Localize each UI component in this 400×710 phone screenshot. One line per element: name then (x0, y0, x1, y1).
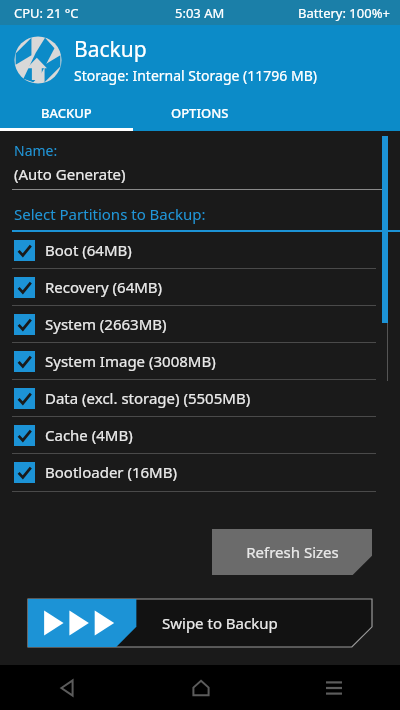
staticText: CPU: 21 °C (14, 4, 79, 22)
button[interactable]: Data (excl. storage) (5505MB) (0, 380, 400, 416)
button[interactable]: Back (0, 665, 134, 710)
button[interactable]: Menu (267, 665, 400, 710)
button[interactable]: Refresh Sizes (212, 529, 372, 575)
button[interactable]: (Auto Generate) (14, 164, 400, 184)
staticText: Bootloader (16MB) (45, 462, 177, 482)
staticText: OPTIONS (171, 104, 229, 122)
staticText: Boot (64MB) (45, 240, 132, 260)
button[interactable]: System (2663MB) (0, 306, 400, 342)
staticText: Storage: Internal Storage (11796 MB) (74, 66, 317, 85)
staticText: Name: (14, 141, 58, 160)
button[interactable]: Bootloader (16MB) (0, 454, 400, 490)
button[interactable]: Swipe to Backup (28, 599, 372, 647)
staticText: System (2663MB) (45, 314, 167, 334)
staticText: Backup (74, 35, 147, 64)
button[interactable]: Cache (4MB) (0, 417, 400, 453)
button[interactable]: OPTIONS (133, 95, 266, 131)
staticText: Swipe to Backup (162, 613, 278, 633)
button[interactable]: System Image (3008MB) (0, 343, 400, 379)
staticText: Refresh Sizes (246, 542, 339, 562)
button[interactable]: BACKUP (0, 95, 133, 131)
staticText: Data (excl. storage) (5505MB) (45, 388, 251, 408)
staticText: Select Partitions to Backup: (14, 204, 206, 224)
button[interactable]: Home (134, 665, 267, 710)
button[interactable]: Recovery (64MB) (0, 269, 400, 305)
staticText: Battery: 100%+ (298, 4, 390, 22)
staticText: BACKUP (41, 104, 92, 122)
staticText: 5:03 AM (175, 4, 225, 22)
staticText: Recovery (64MB) (45, 277, 163, 297)
staticText: System Image (3008MB) (45, 351, 216, 371)
staticText: Cache (4MB) (45, 425, 133, 445)
button[interactable]: Boot (64MB) (0, 232, 400, 268)
